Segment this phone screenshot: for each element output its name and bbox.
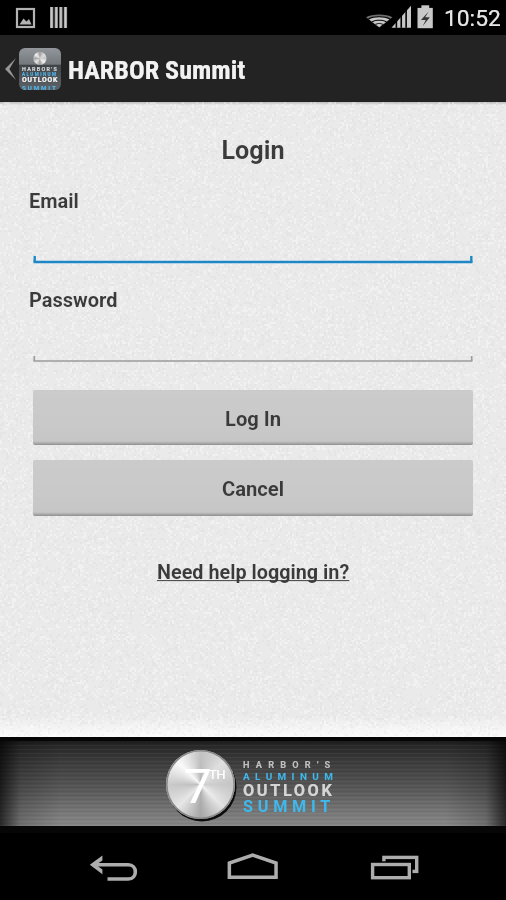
button[interactable]: Need help logging in?	[151, 555, 356, 588]
staticText: Log In	[225, 407, 282, 431]
staticText: SUMMIT	[22, 84, 58, 90]
staticText: HARBOR Summit	[68, 55, 246, 86]
staticText: 10:52	[444, 5, 501, 32]
button[interactable]: Log In	[33, 390, 473, 445]
button[interactable]: Recent apps	[350, 833, 450, 900]
button[interactable]: Cancel	[33, 460, 473, 516]
button[interactable]: Password field	[0, 331, 506, 371]
staticText: OUTLOOK	[243, 781, 335, 800]
staticText: Cancel	[222, 477, 285, 501]
staticText: TH	[209, 767, 226, 782]
staticText: Login	[0, 136, 506, 166]
staticText: Email	[29, 189, 79, 212]
button[interactable]: Email field	[0, 232, 506, 272]
button[interactable]: Home	[200, 833, 306, 900]
button[interactable]: Navigate up	[0, 35, 64, 102]
staticText: OUTLOOK	[22, 76, 59, 84]
staticText: HARBOR'S	[22, 66, 59, 72]
staticText: Need help logging in?	[157, 561, 350, 584]
staticText: ALUMINUM	[243, 771, 339, 783]
staticText: ALUMINUM	[22, 72, 58, 77]
staticText: SUMMIT	[243, 797, 336, 816]
staticText: Password	[29, 288, 118, 311]
staticText: HARBOR'S	[243, 759, 337, 770]
staticText: 7	[184, 758, 212, 815]
button[interactable]: Back	[60, 833, 180, 900]
